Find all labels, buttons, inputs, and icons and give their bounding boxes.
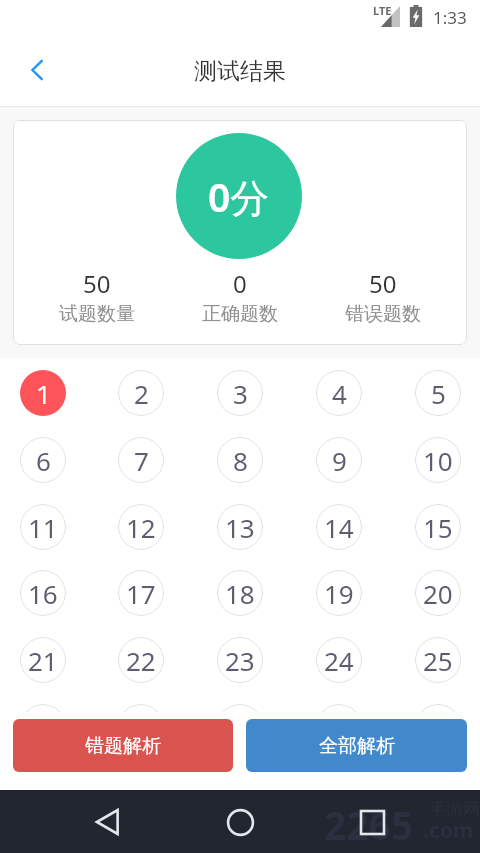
button[interactable]: 16 <box>20 570 66 616</box>
staticText: 18 <box>225 576 255 611</box>
button[interactable]: 1 <box>20 370 66 416</box>
button[interactable]: 24 <box>316 637 362 683</box>
button[interactable]: 20 <box>415 570 461 616</box>
staticText: 25 <box>423 643 453 678</box>
button[interactable]: 6 <box>20 437 66 483</box>
button[interactable]: 12 <box>118 504 164 550</box>
staticText: 20 <box>423 576 453 611</box>
staticText: 13 <box>225 510 255 545</box>
button[interactable]: 19 <box>316 570 362 616</box>
staticText: 9 <box>332 443 347 478</box>
button[interactable]: 25 <box>415 637 461 683</box>
staticText: 16 <box>28 576 58 611</box>
button[interactable]: 11 <box>20 504 66 550</box>
button[interactable]: Back <box>14 48 60 94</box>
staticText: 正确题数 <box>202 302 278 326</box>
staticText: 11 <box>28 510 58 545</box>
staticText: 21 <box>28 643 58 678</box>
button[interactable]: 18 <box>217 570 263 616</box>
button[interactable]: 26 <box>20 704 66 712</box>
staticText: 全部解析 <box>319 734 395 758</box>
button[interactable]: 27 <box>118 704 164 712</box>
staticText: 测试结果 <box>194 57 286 86</box>
staticText: .com <box>423 816 474 845</box>
staticText: 5 <box>431 376 446 411</box>
staticText: 2265 <box>324 798 414 851</box>
button[interactable]: 8 <box>217 437 263 483</box>
staticText: 0分 <box>208 170 270 223</box>
button[interactable]: Back <box>84 798 132 846</box>
staticText: 试题数量 <box>59 302 135 326</box>
staticText: 3 <box>233 376 248 411</box>
staticText: 15 <box>423 510 453 545</box>
staticText: 手游网 <box>429 799 480 820</box>
button[interactable]: 15 <box>415 504 461 550</box>
button[interactable]: 9 <box>316 437 362 483</box>
button[interactable]: 3 <box>217 370 263 416</box>
staticText: 1:33 <box>433 6 467 29</box>
staticText: 22 <box>126 643 156 678</box>
button[interactable]: 7 <box>118 437 164 483</box>
staticText: 14 <box>324 510 354 545</box>
button[interactable]: 13 <box>217 504 263 550</box>
button[interactable]: 14 <box>316 504 362 550</box>
staticText: 19 <box>324 576 354 611</box>
button[interactable]: 17 <box>118 570 164 616</box>
staticText: 17 <box>126 576 156 611</box>
button[interactable]: 21 <box>20 637 66 683</box>
button[interactable]: 全部解析 <box>246 719 467 772</box>
button[interactable]: 10 <box>415 437 461 483</box>
button[interactable]: 30 <box>415 704 461 712</box>
staticText: 7 <box>134 443 149 478</box>
staticText: 10 <box>423 443 453 478</box>
button[interactable]: 28 <box>217 704 263 712</box>
staticText: 4 <box>332 376 347 411</box>
staticText: 12 <box>126 510 156 545</box>
staticText: 错题解析 <box>85 734 161 758</box>
staticText: 50 <box>83 267 111 300</box>
staticText: 50 <box>369 267 397 300</box>
staticText: 8 <box>233 443 248 478</box>
staticText: 23 <box>225 643 255 678</box>
button[interactable]: Home <box>216 798 264 846</box>
button[interactable]: 22 <box>118 637 164 683</box>
staticText: 错误题数 <box>345 302 421 326</box>
staticText: 2 <box>134 376 149 411</box>
staticText: 6 <box>36 443 51 478</box>
button[interactable]: 29 <box>316 704 362 712</box>
button[interactable]: 4 <box>316 370 362 416</box>
staticText: 0 <box>233 267 247 300</box>
button[interactable]: 错题解析 <box>13 719 233 772</box>
button[interactable]: 5 <box>415 370 461 416</box>
staticText: 24 <box>324 643 354 678</box>
button[interactable]: 2 <box>118 370 164 416</box>
staticText: LTE <box>373 3 392 18</box>
button[interactable]: 23 <box>217 637 263 683</box>
staticText: 1 <box>36 376 51 411</box>
button[interactable]: Recent apps <box>348 798 396 846</box>
